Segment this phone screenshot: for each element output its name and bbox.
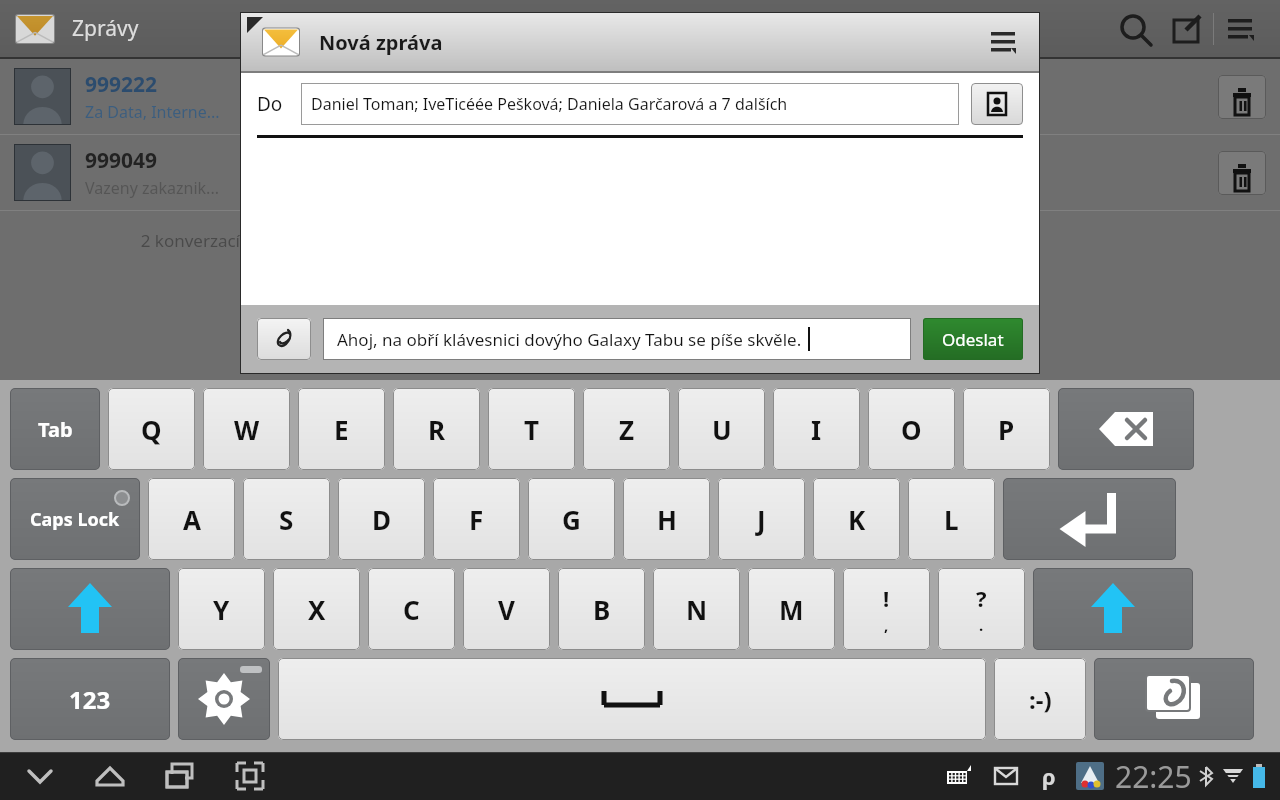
button[interactable]: Smazat (1218, 75, 1266, 119)
button[interactable]: Y (178, 568, 265, 650)
button[interactable]: Přiložit (257, 318, 311, 360)
button[interactable]: I (773, 388, 860, 470)
button[interactable]: Mezerník (278, 658, 986, 740)
staticText: 123 (69, 683, 111, 716)
button[interactable]: B (558, 568, 645, 650)
staticText: C (403, 592, 420, 627)
button[interactable]: S (243, 478, 330, 560)
button[interactable]: G (528, 478, 615, 560)
staticText: Z (619, 412, 635, 447)
button[interactable]: Shift (1033, 568, 1193, 650)
button[interactable]: Smazat (1058, 388, 1194, 470)
staticText: L (944, 502, 959, 537)
staticText: D (372, 502, 392, 537)
staticText: . (979, 615, 984, 635)
button[interactable]: Snímek obrazovky (222, 752, 278, 800)
button[interactable]: Nastavení klávesnice (178, 658, 270, 740)
button[interactable]: 999222 (0, 59, 1280, 134)
button[interactable]: Q (108, 388, 195, 470)
staticText: V (498, 592, 515, 627)
staticText: Vazeny zakaznik... (85, 177, 219, 199)
button[interactable]: O (868, 388, 955, 470)
staticText: ρ (1042, 761, 1056, 791)
button[interactable]: R (393, 388, 480, 470)
staticText: T (524, 412, 540, 447)
staticText: F (469, 502, 484, 537)
staticText: B (593, 592, 611, 627)
staticText: 999222 (85, 70, 158, 99)
button[interactable]: M (748, 568, 835, 650)
staticText: J (757, 502, 766, 537)
staticText: Y (213, 592, 230, 627)
staticText: Zprávy (72, 14, 139, 43)
staticText: 2 konverzací (0, 229, 240, 252)
staticText: M (779, 592, 804, 627)
button[interactable]: K (813, 478, 900, 560)
button[interactable]: X (273, 568, 360, 650)
staticText: , (884, 615, 889, 635)
button[interactable]: :-) (994, 658, 1086, 740)
button[interactable]: E (298, 388, 385, 470)
button[interactable]: H (623, 478, 710, 560)
button[interactable]: W (203, 388, 290, 470)
button[interactable]: Nová zpráva (1161, 3, 1213, 55)
staticText: S (279, 502, 294, 537)
button[interactable]: Caps Lock (10, 478, 140, 560)
button[interactable]: L (908, 478, 995, 560)
staticText: Nová zpráva (319, 29, 443, 56)
staticText: O (901, 412, 922, 447)
button[interactable]: J (718, 478, 805, 560)
staticText: 999049 (85, 146, 158, 175)
button[interactable]: V (463, 568, 550, 650)
button[interactable]: Hledat (1109, 3, 1161, 55)
staticText: ! (883, 583, 890, 613)
button[interactable]: Ahoj, na obří klávesnici dovýho Galaxy T… (323, 318, 911, 360)
button[interactable]: C (368, 568, 455, 650)
button[interactable]: ! (843, 568, 930, 650)
staticText: A (183, 502, 201, 537)
button[interactable]: Kontakty (971, 83, 1023, 125)
button[interactable]: Přílohy (1094, 658, 1254, 740)
button[interactable]: Klávesnice (935, 752, 983, 800)
staticText: K (848, 502, 866, 537)
staticText: I (811, 412, 822, 447)
button[interactable]: 999049 (0, 135, 1280, 210)
staticText: Caps Lock (30, 507, 120, 532)
button[interactable]: Shift (10, 568, 170, 650)
button[interactable]: Enter (1003, 478, 1176, 560)
staticText: N (686, 592, 708, 627)
staticText: Tab (38, 416, 73, 443)
staticText: 22:25 (1115, 756, 1192, 797)
staticText: X (308, 592, 326, 627)
staticText: W (234, 412, 260, 447)
button[interactable]: N (653, 568, 740, 650)
staticText: Za Data, Interne... (85, 101, 220, 123)
staticText: Q (141, 412, 162, 447)
button[interactable]: Možnosti (981, 20, 1025, 64)
staticText: R (428, 412, 446, 447)
staticText: P (998, 412, 1015, 447)
staticText: Daniel Toman; IveTicéée Pešková; Daniela… (311, 93, 788, 115)
button[interactable]: D (338, 478, 425, 560)
button[interactable]: Daniel Toman; IveTicéée Pešková; Daniela… (301, 83, 959, 125)
button[interactable]: P (963, 388, 1050, 470)
button[interactable]: Smazat (1218, 151, 1266, 195)
button[interactable]: ? (938, 568, 1025, 650)
button[interactable]: T (488, 388, 575, 470)
button[interactable]: Další možnosti (1214, 3, 1266, 55)
button[interactable]: Odeslat (923, 318, 1023, 360)
button[interactable]: U (678, 388, 765, 470)
button[interactable]: 123 (10, 658, 170, 740)
staticText: Odeslat (942, 328, 1004, 351)
button[interactable]: Poslední aplikace (152, 752, 208, 800)
button[interactable]: Zpět (12, 752, 68, 800)
staticText: G (562, 502, 581, 537)
button[interactable]: F (433, 478, 520, 560)
button[interactable]: Domů (82, 752, 138, 800)
button[interactable]: A (148, 478, 235, 560)
button[interactable]: Tab (10, 388, 100, 470)
staticText: ? (976, 583, 987, 613)
staticText: H (657, 502, 677, 537)
staticText: Do (257, 91, 283, 117)
button[interactable]: Z (583, 388, 670, 470)
